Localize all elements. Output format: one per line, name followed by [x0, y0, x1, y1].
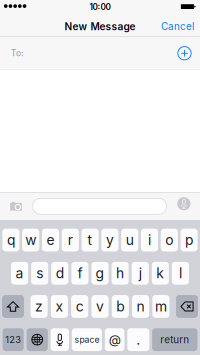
staticText: u — [126, 232, 134, 248]
button[interactable]: Dictation — [51, 328, 69, 351]
staticText: h — [116, 265, 124, 282]
button[interactable]: Add contact — [174, 43, 200, 64]
button[interactable]: 123 — [2, 328, 24, 351]
button[interactable]: Delete — [176, 295, 198, 318]
button[interactable]: space — [72, 328, 102, 351]
staticText: x — [55, 298, 63, 315]
staticText: a — [16, 265, 24, 282]
staticText: k — [156, 265, 164, 282]
staticText: b — [116, 298, 124, 315]
button[interactable]: z — [31, 295, 48, 318]
staticText: space — [74, 334, 99, 345]
button[interactable]: f — [71, 262, 88, 285]
staticText: v — [96, 298, 104, 315]
staticText: f — [77, 265, 82, 282]
button[interactable]: h — [112, 262, 129, 285]
staticText: d — [56, 265, 64, 282]
button[interactable]: c — [71, 295, 88, 318]
staticText: t — [88, 232, 93, 248]
button[interactable]: Camera — [4, 195, 28, 218]
staticText: s — [36, 265, 43, 282]
button[interactable]: v — [91, 295, 109, 318]
button[interactable]: d — [51, 262, 68, 285]
button[interactable]: Shift — [2, 295, 24, 318]
staticText: New Message — [64, 20, 135, 33]
button[interactable]: r — [62, 229, 79, 251]
staticText: 123 — [5, 334, 21, 345]
button[interactable]: s — [31, 262, 48, 285]
button[interactable]: b — [112, 295, 129, 318]
staticText: p — [185, 232, 193, 248]
button[interactable]: x — [51, 295, 68, 318]
button[interactable]: m — [152, 295, 169, 318]
staticText: Cancel — [161, 20, 194, 32]
button[interactable]: p — [181, 229, 198, 251]
button[interactable]: . — [127, 328, 149, 351]
staticText: n — [137, 298, 145, 315]
button[interactable]: l — [172, 262, 189, 285]
staticText: return — [160, 334, 189, 346]
staticText: @ — [109, 332, 121, 347]
button[interactable]: @ — [105, 328, 124, 351]
staticText: . — [136, 331, 140, 348]
button[interactable]: a — [11, 262, 28, 285]
button[interactable]: Record audio — [176, 195, 192, 218]
staticText: z — [35, 298, 43, 315]
staticText: c — [76, 298, 84, 315]
staticText: i — [148, 232, 151, 248]
button[interactable]: j — [132, 262, 149, 285]
staticText: g — [95, 265, 104, 282]
staticText: r — [68, 232, 73, 248]
button[interactable]: u — [121, 229, 138, 251]
button[interactable]: o — [161, 229, 178, 251]
staticText: 10:00 — [89, 2, 110, 12]
button[interactable]: w — [22, 229, 39, 251]
button[interactable]: i — [141, 229, 158, 251]
button[interactable]: q — [2, 229, 19, 251]
button[interactable]: e — [42, 229, 59, 251]
button[interactable]: Cancel — [156, 15, 199, 37]
button[interactable]: return — [152, 328, 197, 351]
button[interactable]: t — [82, 229, 99, 251]
staticText: To: — [11, 48, 23, 58]
button[interactable]: g — [91, 262, 109, 285]
staticText: m — [155, 298, 167, 315]
staticText: q — [7, 232, 15, 248]
staticText: l — [179, 265, 182, 282]
staticText: w — [25, 232, 36, 248]
staticText: o — [165, 232, 173, 248]
button[interactable]: n — [132, 295, 149, 318]
button[interactable]: k — [152, 262, 169, 285]
button[interactable]: y — [101, 229, 118, 251]
staticText: j — [139, 265, 142, 282]
staticText: e — [46, 232, 54, 248]
button[interactable]: Next keyboard — [27, 328, 48, 351]
staticText: y — [106, 232, 114, 248]
